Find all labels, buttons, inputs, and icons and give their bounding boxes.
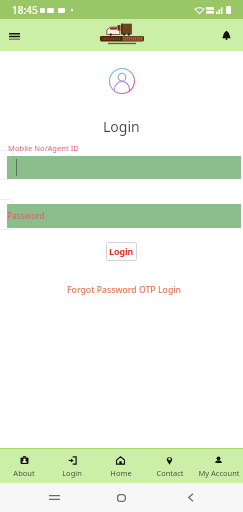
staticText: Login [103, 117, 140, 136]
button[interactable]: Login [106, 242, 137, 261]
staticText: Mobile No/Agent ID [8, 143, 79, 153]
button[interactable]: Home [96, 449, 145, 483]
staticText: Login [109, 246, 134, 258]
button[interactable]: About [0, 449, 48, 483]
button[interactable]: Contact [145, 449, 194, 483]
staticText: Password [7, 210, 45, 221]
button[interactable]: Recent apps [40, 483, 68, 512]
staticText: About [13, 468, 35, 478]
button[interactable]: Forgot Password OTP Login [67, 284, 182, 296]
staticText: My Account [198, 468, 240, 478]
button[interactable]: My Account [194, 449, 243, 483]
staticText: Contact [156, 468, 184, 478]
button[interactable]: Open navigation menu [0, 19, 28, 51]
staticText: 18:45 [12, 3, 38, 17]
button[interactable]: Login [48, 449, 96, 483]
staticText: Home [110, 468, 132, 478]
button[interactable]: Notifications [215, 24, 237, 46]
button[interactable]: Password [7, 204, 241, 228]
button[interactable] [7, 156, 241, 179]
staticText: Login [62, 468, 82, 478]
button[interactable]: Back [176, 483, 204, 512]
button[interactable]: Home [107, 483, 136, 512]
